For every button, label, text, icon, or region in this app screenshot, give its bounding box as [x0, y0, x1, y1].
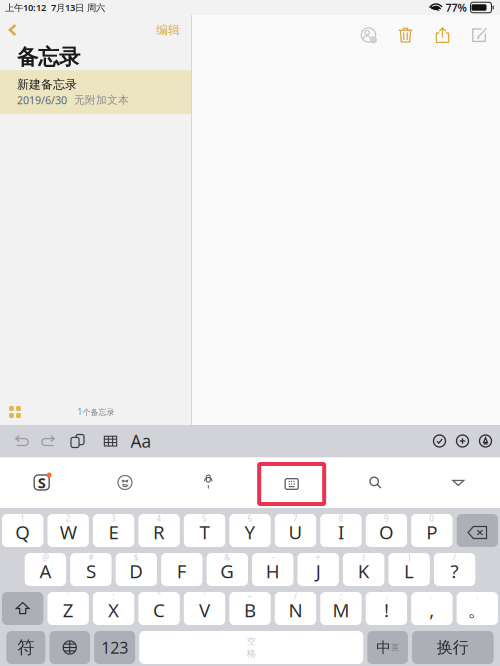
button[interactable]: @	[25, 553, 66, 586]
staticText: T	[199, 520, 209, 544]
button[interactable]: 4	[138, 514, 180, 547]
staticText: Q	[15, 520, 30, 544]
button[interactable]: "	[138, 592, 180, 625]
staticText: G	[220, 559, 234, 583]
button[interactable]: :	[93, 592, 134, 625]
staticText: #	[88, 552, 93, 563]
button[interactable]: Keyboard	[250, 457, 333, 508]
button[interactable]: 3	[93, 514, 134, 547]
button[interactable]: #	[70, 553, 112, 586]
button[interactable]: (	[343, 553, 384, 586]
button[interactable]: Insert	[451, 428, 474, 454]
button[interactable]	[2, 592, 43, 625]
button[interactable]: 8	[320, 514, 362, 547]
button[interactable]: $	[116, 553, 157, 586]
button[interactable]: Paste	[61, 428, 94, 454]
staticText: .	[385, 591, 387, 602]
button[interactable]: 编辑	[151, 20, 185, 40]
staticText: 9	[384, 513, 389, 524]
button[interactable]	[457, 514, 498, 547]
button[interactable]: ;	[320, 592, 362, 625]
button[interactable]: Delete	[387, 22, 424, 48]
button[interactable]: 5	[184, 514, 225, 547]
button[interactable]: 0	[411, 514, 453, 547]
button[interactable]: Emoji	[83, 457, 167, 508]
button[interactable]: Checklist	[428, 428, 451, 454]
staticText: 5	[202, 513, 207, 524]
staticText: 6	[247, 513, 252, 524]
button[interactable]: '	[47, 592, 89, 625]
button[interactable]: 符	[6, 631, 45, 664]
button[interactable]: 1	[2, 514, 43, 547]
button[interactable]: 7	[275, 514, 316, 547]
staticText: Aa	[130, 429, 151, 452]
button[interactable]: Aa	[127, 428, 155, 454]
staticText: 2	[66, 513, 71, 524]
button[interactable]	[49, 631, 90, 664]
staticText: !	[384, 598, 389, 622]
staticText: 8	[338, 513, 343, 524]
staticText: F	[177, 559, 187, 583]
button[interactable]: 中	[367, 631, 408, 664]
staticText: 1个备忘录	[77, 407, 114, 417]
staticText: H	[266, 559, 280, 583]
button[interactable]: )	[388, 553, 430, 586]
button[interactable]: 换行	[412, 631, 494, 664]
button[interactable]: 空	[139, 631, 363, 664]
staticText: 格	[247, 648, 256, 659]
button[interactable]: 9	[366, 514, 407, 547]
button[interactable]: Redo	[35, 428, 61, 454]
staticText: 4	[157, 513, 162, 524]
staticText: W	[60, 520, 77, 544]
staticText: 备忘录	[17, 44, 80, 70]
staticText: R	[153, 520, 165, 544]
staticText: 2019/6/30	[17, 93, 67, 107]
staticText: 英	[391, 643, 399, 652]
button[interactable]: &	[207, 553, 248, 586]
staticText: /	[294, 591, 297, 602]
button[interactable]: .	[411, 592, 453, 625]
button[interactable]: /	[275, 592, 316, 625]
staticText: 空	[247, 635, 256, 647]
button[interactable]: .	[366, 592, 407, 625]
button[interactable]: Search	[333, 457, 417, 508]
staticText: B	[244, 598, 256, 622]
button[interactable]: Undo	[9, 428, 35, 454]
button[interactable]: 新建备忘录	[0, 70, 191, 114]
staticText: "	[158, 591, 161, 602]
button[interactable]: Share	[424, 22, 461, 48]
button[interactable]: New Note	[461, 22, 498, 48]
button[interactable]: .	[457, 592, 498, 625]
staticText: Z	[63, 598, 74, 622]
button[interactable]: _	[161, 553, 202, 586]
button[interactable]: Markup	[474, 428, 497, 454]
staticText: )	[408, 552, 410, 563]
button[interactable]: 2	[47, 514, 89, 547]
button[interactable]: Input method	[0, 457, 83, 508]
button[interactable]: +	[297, 553, 339, 586]
staticText: 7	[293, 513, 298, 524]
button[interactable]: /	[434, 553, 475, 586]
staticText: E	[109, 520, 119, 544]
staticText: X	[108, 598, 119, 622]
staticText: S	[38, 473, 46, 492]
button[interactable]: ~	[229, 592, 271, 625]
button[interactable]: -	[252, 553, 293, 586]
button[interactable]: '	[184, 592, 225, 625]
button[interactable]: 123	[94, 631, 135, 664]
button[interactable]: Add People	[350, 22, 387, 48]
button[interactable]: Hide keyboard	[417, 457, 500, 508]
button[interactable]: Table	[94, 428, 127, 454]
button[interactable]: Gallery view	[0, 400, 21, 424]
staticText: L	[404, 559, 414, 583]
button[interactable]: Back	[1, 20, 25, 40]
staticText: 新建备忘录	[17, 77, 77, 92]
staticText: A	[39, 559, 51, 583]
staticText: 。	[468, 598, 487, 621]
button[interactable]: 6	[229, 514, 271, 547]
button[interactable]: Voice input	[167, 457, 250, 508]
staticText: +	[316, 552, 321, 563]
staticText: C	[153, 598, 165, 622]
staticText: @	[42, 552, 49, 563]
staticText: 上午10:12	[5, 1, 46, 14]
